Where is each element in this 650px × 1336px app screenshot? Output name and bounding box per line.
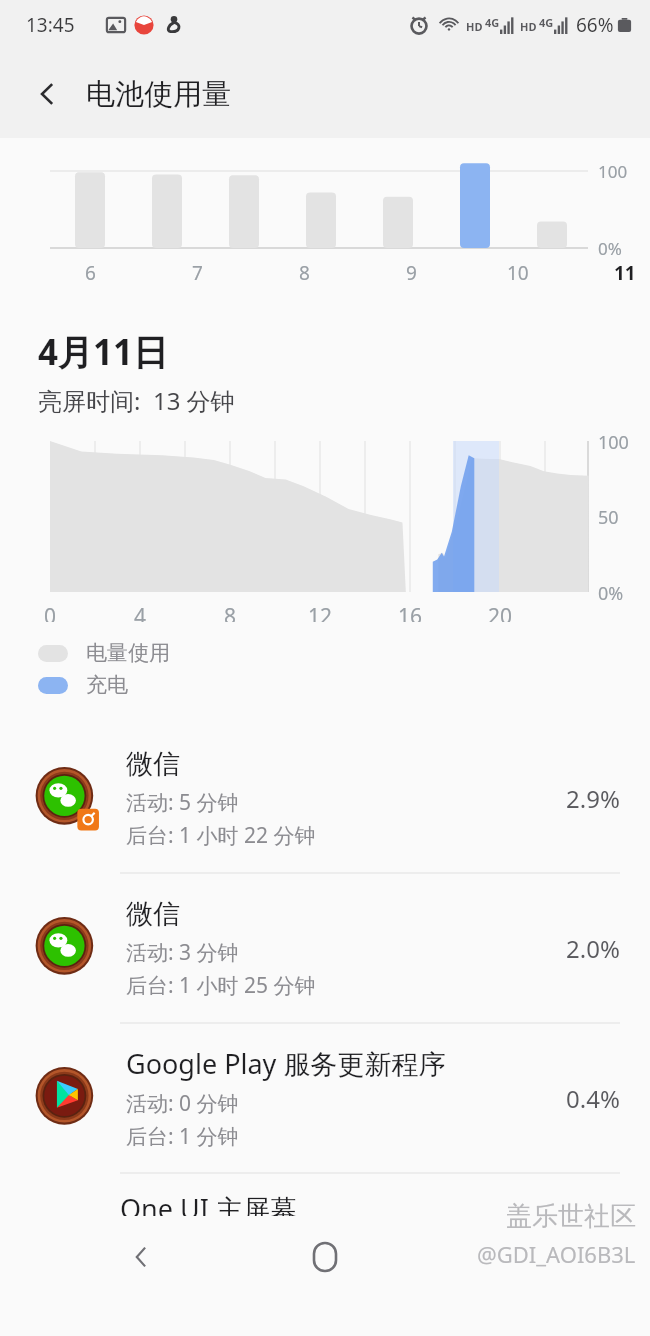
staticText: 12: [308, 602, 333, 631]
button[interactable]: 微信: [0, 874, 650, 1022]
staticText: 2.9%: [566, 782, 620, 815]
staticText: 电量使用: [86, 640, 170, 666]
staticText: 4: [134, 602, 147, 631]
staticText: 活动: 0 分钟: [126, 1089, 239, 1118]
staticText: 10: [507, 260, 529, 286]
staticText: 100: [598, 430, 629, 455]
staticText: 66%: [576, 12, 614, 38]
staticText: 4月11日: [38, 328, 169, 376]
staticText: 9: [406, 260, 417, 286]
staticText: 6: [85, 260, 96, 286]
button[interactable]: Recents: [475, 1224, 541, 1290]
staticText: 0: [44, 602, 57, 631]
button[interactable]: Back: [109, 1224, 175, 1290]
staticText: 0.4%: [566, 1082, 620, 1115]
button[interactable]: Google Play 服务更新程序: [0, 1024, 650, 1172]
button[interactable]: 微信: [0, 724, 650, 872]
staticText: 50: [598, 505, 619, 530]
staticText: 亮屏时间: 13 分钟: [38, 384, 235, 417]
staticText: 活动: 5 分钟: [126, 788, 239, 817]
staticText: HD: [520, 19, 537, 34]
staticText: 100: [598, 160, 628, 183]
staticText: 8: [224, 602, 237, 631]
button[interactable]: Back: [22, 68, 74, 120]
staticText: 4G: [485, 15, 500, 30]
staticText: 16: [398, 602, 423, 631]
staticText: 电池使用量: [86, 76, 231, 113]
staticText: 8: [299, 260, 310, 286]
staticText: 0%: [598, 237, 622, 260]
staticText: 微信: [126, 897, 180, 931]
button[interactable]: One UI 主屏幕: [0, 1174, 650, 1210]
staticText: 2.0%: [566, 932, 620, 965]
staticText: 13:45: [26, 12, 75, 38]
staticText: HD: [466, 19, 483, 34]
staticText: 盖乐世社区: [506, 1200, 636, 1233]
staticText: One UI 主屏幕: [120, 1190, 297, 1226]
staticText: 后台: 1 分钟: [126, 1122, 239, 1151]
staticText: 4G: [539, 15, 554, 30]
staticText: 0%: [598, 581, 624, 606]
staticText: 活动: 3 分钟: [126, 938, 239, 967]
staticText: 充电: [86, 672, 128, 698]
staticText: 7: [192, 260, 203, 286]
staticText: 11: [614, 260, 636, 286]
staticText: 20: [488, 602, 513, 631]
staticText: Google Play 服务更新程序: [126, 1045, 446, 1082]
staticText: 微信: [126, 747, 180, 781]
button[interactable]: Home: [292, 1224, 358, 1290]
staticText: 后台: 1 小时 22 分钟: [126, 821, 316, 850]
staticText: @GDI_AOI6B3L: [477, 1239, 636, 1269]
staticText: 后台: 1 小时 25 分钟: [126, 971, 316, 1000]
